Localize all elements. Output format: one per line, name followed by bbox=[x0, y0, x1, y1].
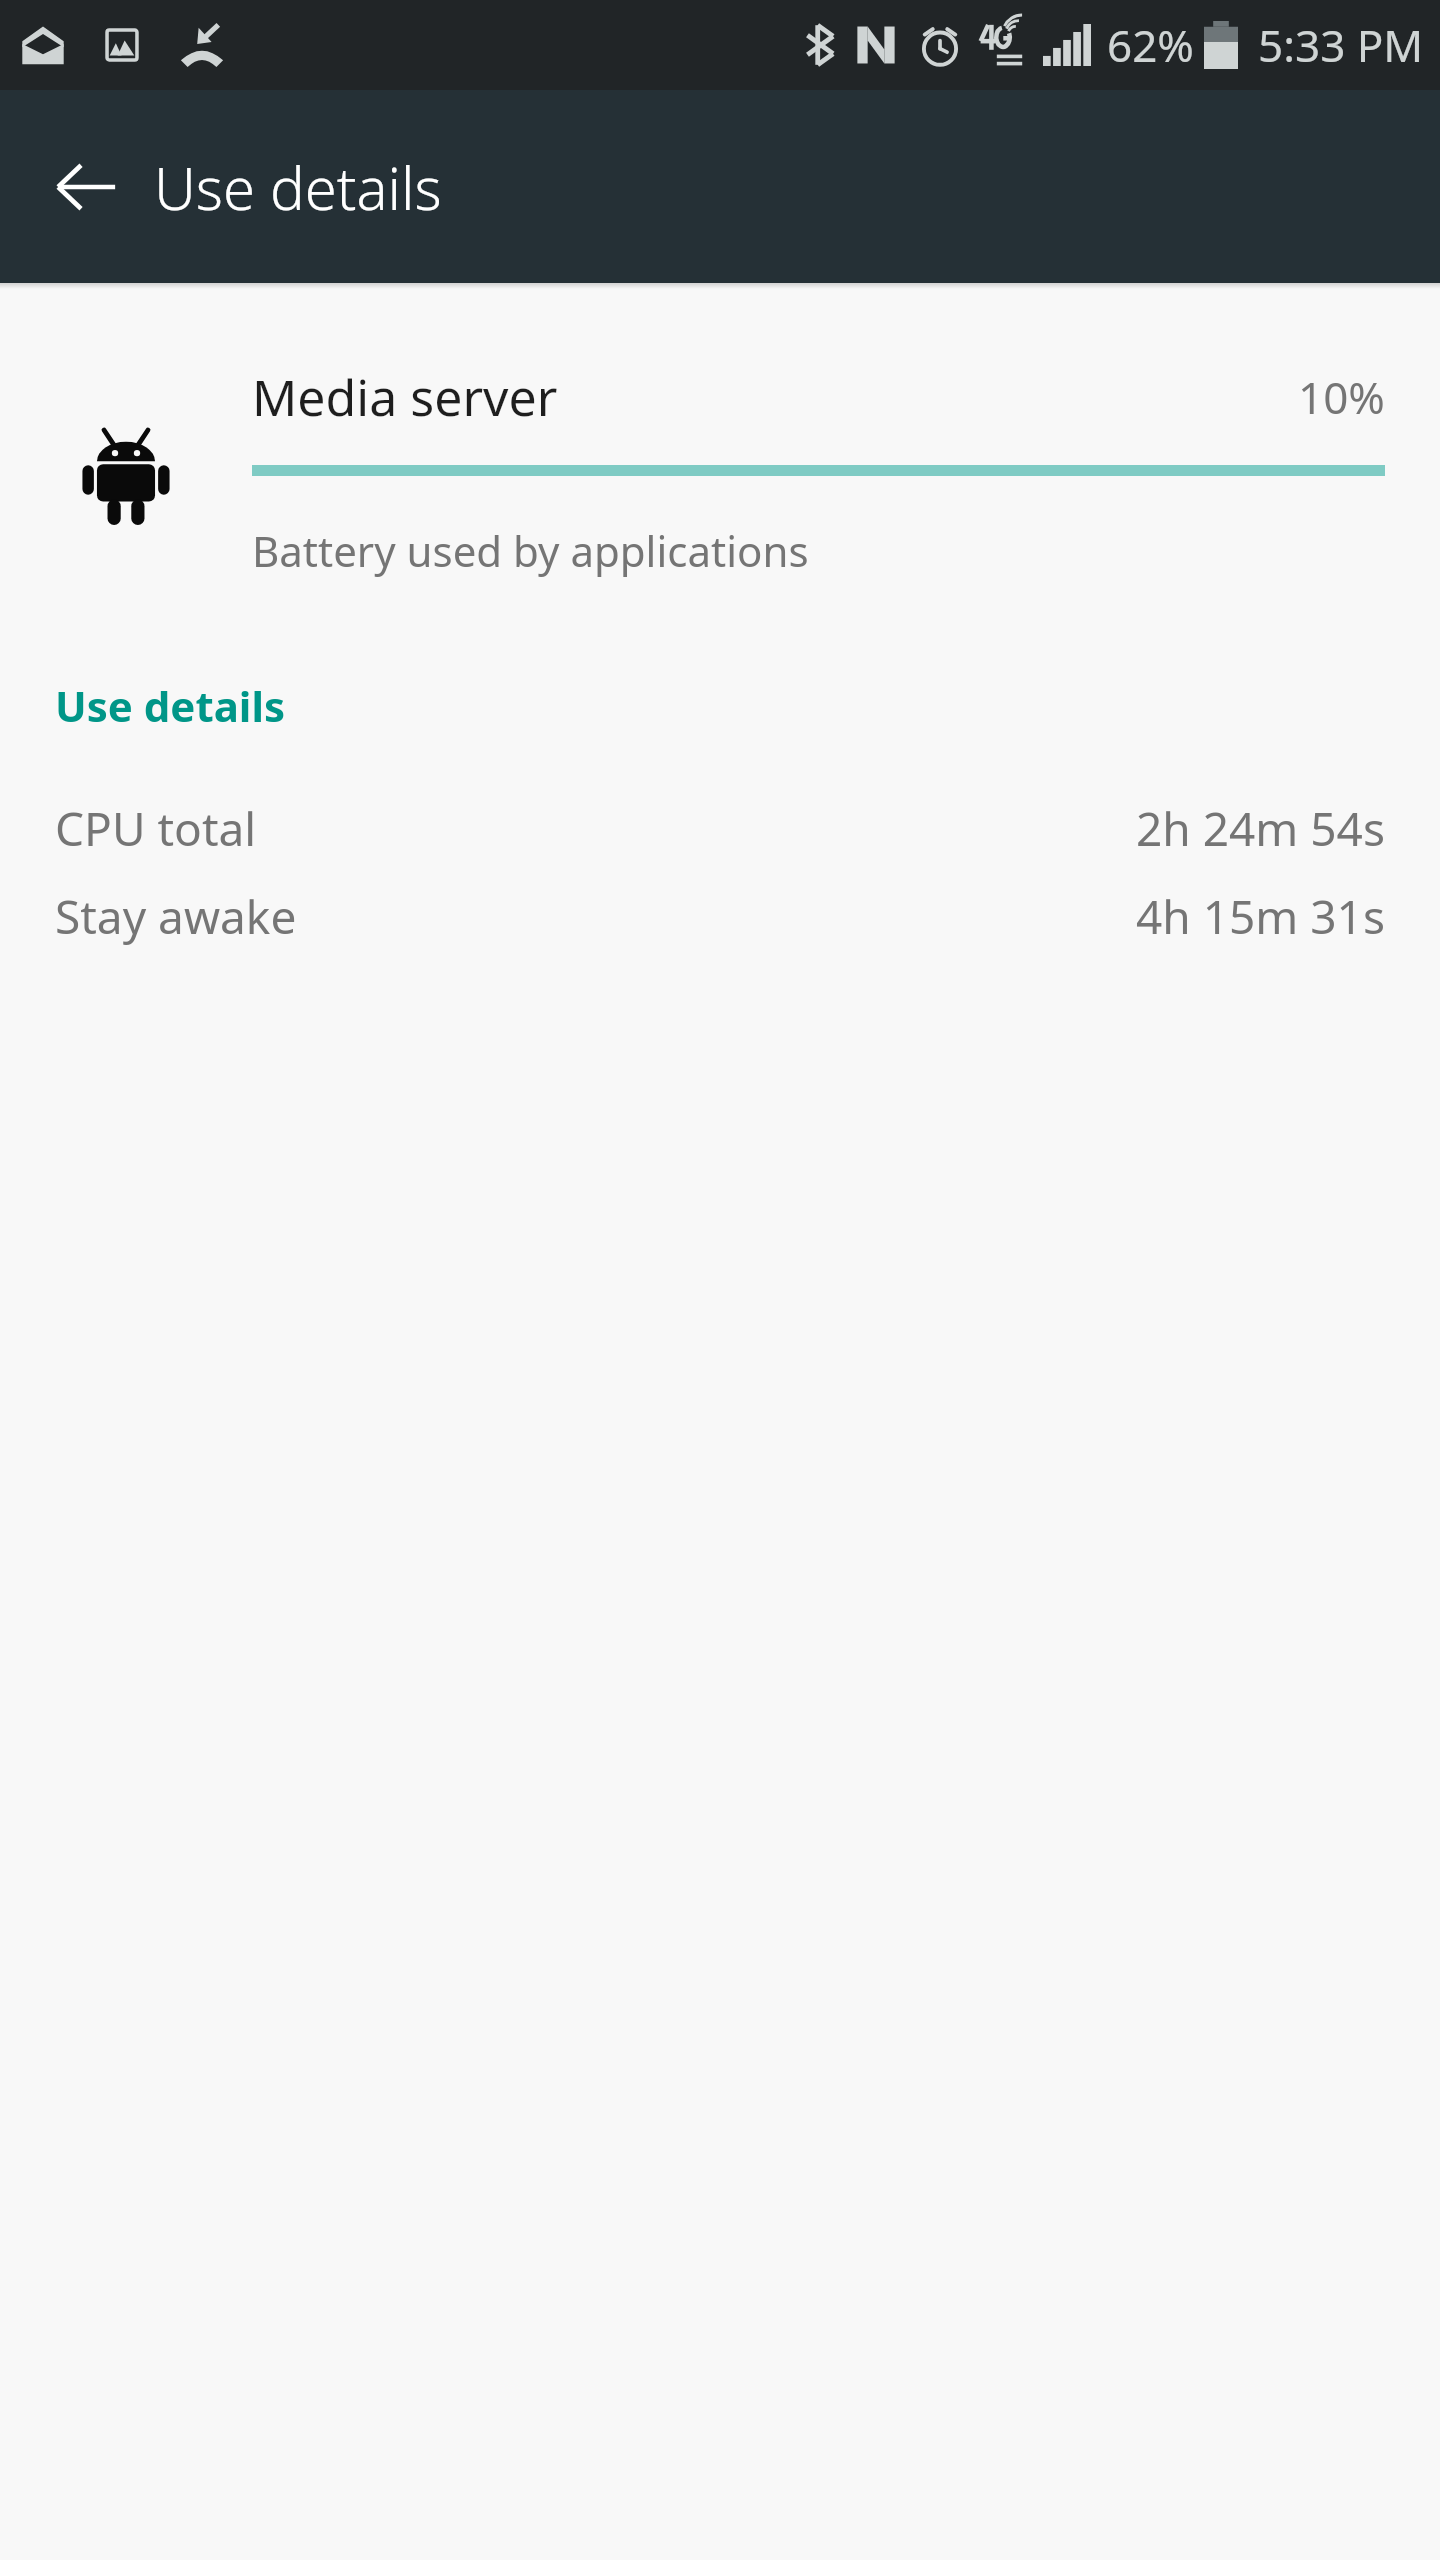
staticText: Use details bbox=[55, 677, 285, 734]
button[interactable]: Navigate up bbox=[38, 139, 134, 235]
staticText: Stay awake bbox=[55, 885, 1136, 948]
staticText: CPU total bbox=[55, 797, 1136, 860]
staticText: 2h 24m 54s bbox=[1136, 797, 1385, 860]
button[interactable]: Stay awake bbox=[0, 872, 1440, 960]
button[interactable]: CPU total bbox=[0, 784, 1440, 872]
staticText: Battery used by applications bbox=[252, 522, 809, 579]
staticText: 62% bbox=[1107, 15, 1194, 75]
staticText: Media server bbox=[252, 363, 1298, 431]
staticText: 5:33 PM bbox=[1258, 15, 1424, 75]
staticText: 4h 15m 31s bbox=[1136, 885, 1385, 948]
staticText: Use details bbox=[154, 148, 442, 227]
staticText: 10% bbox=[1298, 367, 1385, 427]
